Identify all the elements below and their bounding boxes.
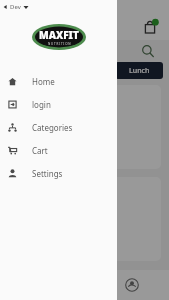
button[interactable]: Lunch xyxy=(115,62,163,79)
button[interactable]: Cart xyxy=(141,17,161,37)
staticText: Settings xyxy=(32,168,63,179)
staticText: MAXFIT xyxy=(39,28,79,42)
button[interactable]: Nav 2 xyxy=(121,274,143,296)
staticText: Cart xyxy=(32,145,48,156)
staticText: N U T R I T I O N xyxy=(48,42,71,46)
button[interactable]: Settings xyxy=(0,162,117,185)
staticText: Lunch xyxy=(129,66,150,76)
staticText: Dev xyxy=(10,3,21,11)
staticText: Categories xyxy=(32,122,73,133)
button[interactable]: Search xyxy=(141,44,155,58)
button[interactable]: Meals xyxy=(8,62,55,79)
button[interactable]: Home xyxy=(0,70,117,93)
staticText: Home xyxy=(32,76,55,87)
staticText: Breakfast xyxy=(14,91,52,102)
staticText: login xyxy=(32,99,51,110)
button[interactable]: Categories xyxy=(0,116,117,139)
button[interactable]: login xyxy=(0,93,117,116)
button[interactable]: Burrito xyxy=(8,177,161,261)
button[interactable]: Cart xyxy=(0,139,117,162)
button[interactable]: Breakfast xyxy=(8,85,161,169)
